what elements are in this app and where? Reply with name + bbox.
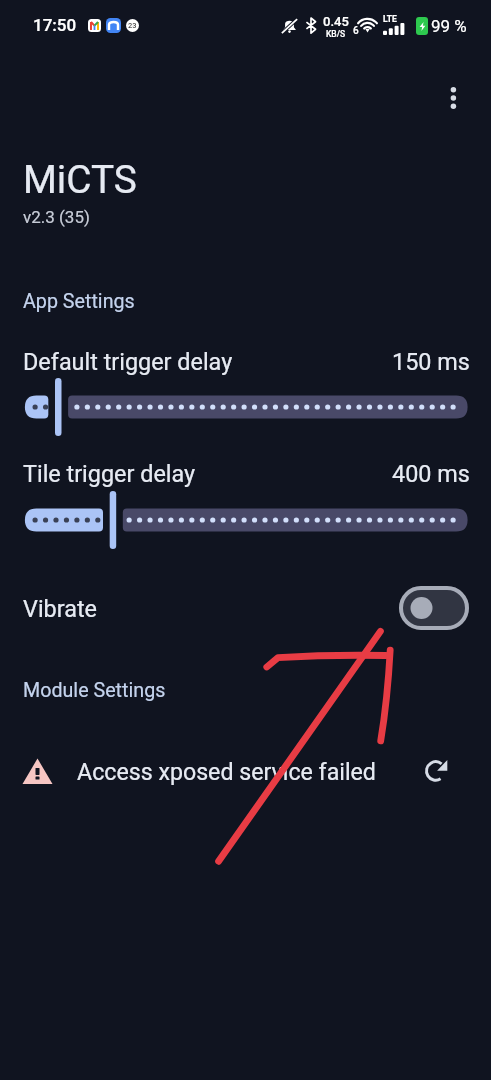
button[interactable]: More options <box>431 76 475 120</box>
staticText: 150 ms <box>392 348 470 375</box>
staticText: Vibrate <box>23 595 97 622</box>
button[interactable]: Vibrate <box>0 584 491 632</box>
staticText: LTE <box>383 14 397 24</box>
button[interactable]: Access xposed service failed <box>0 753 491 789</box>
staticText: 6 <box>353 25 359 37</box>
staticText: v2.3 (35) <box>23 207 90 227</box>
staticText: 400 ms <box>392 460 470 487</box>
staticText: 23 <box>128 21 137 30</box>
staticText: App Settings <box>23 290 135 313</box>
staticText: Access xposed service failed <box>77 758 376 785</box>
staticText: 17:50 <box>33 15 77 35</box>
button[interactable]: Tile trigger delay slider <box>0 491 491 549</box>
staticText: MiCTS <box>23 157 137 202</box>
staticText: Default trigger delay <box>23 348 233 375</box>
staticText: Module Settings <box>23 679 166 702</box>
staticText: KB/S <box>326 29 346 39</box>
button[interactable]: Default trigger delay slider <box>0 378 491 436</box>
staticText: 99 % <box>431 16 467 36</box>
staticText: Tile trigger delay <box>23 460 196 487</box>
button[interactable]: Refresh <box>419 754 453 788</box>
staticText: 0.45 <box>323 14 349 29</box>
